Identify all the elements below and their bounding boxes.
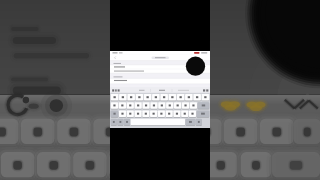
button[interactable]: Video player: [0, 0, 320, 180]
